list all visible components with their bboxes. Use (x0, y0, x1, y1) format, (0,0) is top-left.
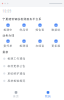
staticText: 原材检验规范 (8, 79, 26, 83)
staticText: 10:09 (3, 10, 12, 13)
button[interactable]: 检测申 (0, 24, 16, 31)
staticText: 在线咨 (35, 44, 44, 47)
staticText: 标准更新公告 (8, 64, 26, 68)
staticText: 系统维护通知 (8, 72, 26, 75)
staticText: 样品登 (19, 28, 28, 31)
button[interactable]: 检测项 (16, 40, 32, 47)
staticText: 数据统 (51, 28, 60, 31)
staticText: 首页 (13, 95, 19, 98)
staticText: 更多服 (51, 44, 60, 47)
button[interactable]: 数据统 (48, 24, 64, 31)
button[interactable]: 更多服 (48, 40, 64, 47)
staticText: 最新 (2, 50, 8, 54)
staticText: 委托单 (3, 44, 12, 47)
staticText: 我的 (45, 95, 51, 98)
staticText: 检测工作通知 (8, 57, 26, 60)
button[interactable]: 报告查 (32, 24, 48, 31)
button[interactable]: 系统维护通知 (0, 70, 64, 77)
button[interactable]: 标准更新公告 (0, 62, 64, 70)
staticText: 宁夏建筑钢筋检测服务平台系 (2, 17, 41, 21)
staticText: 检测申 (3, 28, 12, 31)
staticText: 业务办理 (2, 34, 14, 37)
button[interactable]: 委托单 (0, 40, 16, 47)
button[interactable]: 首页 (0, 91, 32, 98)
staticText: 报告查 (35, 28, 44, 31)
button[interactable]: 在线咨 (32, 40, 48, 47)
button[interactable]: 我的 (32, 91, 64, 98)
staticText: 检测项 (19, 44, 28, 47)
button[interactable]: 检测工作通知 (0, 55, 64, 62)
button[interactable]: 原材检验规范 (0, 77, 64, 85)
button[interactable]: 样品登 (16, 24, 32, 31)
